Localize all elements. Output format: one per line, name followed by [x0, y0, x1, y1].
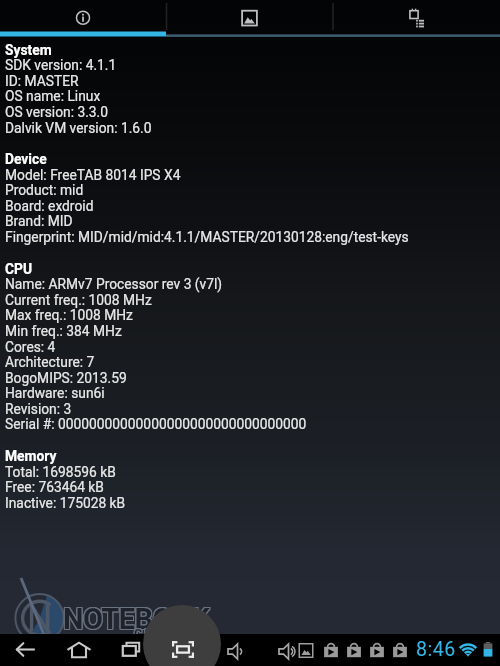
staticText: NOTEBOOK	[63, 602, 210, 636]
staticText: CENTER	[134, 625, 196, 640]
staticText: CENTER	[135, 626, 197, 641]
staticText: Revision: 3	[5, 401, 72, 417]
staticText: NOTEBOOK	[64, 602, 211, 636]
staticText: Board: exdroid	[5, 198, 94, 214]
staticText: CPU	[5, 261, 33, 277]
button[interactable]: Screenshot saved	[290, 634, 322, 666]
staticText: Memory	[5, 448, 57, 464]
staticText: Architecture: 7	[5, 354, 95, 370]
staticText: Serial #: 000000000000000000000000000000…	[5, 416, 307, 432]
staticText: BogoMIPS: 2013.59	[5, 370, 127, 386]
button[interactable]: Back	[10, 634, 42, 666]
staticText: CENTER	[133, 625, 195, 640]
button[interactable]: Recent apps	[115, 634, 147, 666]
staticText: NOTEBOOK	[62, 601, 209, 635]
staticText: Device	[5, 151, 47, 167]
staticText: Current freq.: 1008 MHz	[5, 292, 152, 308]
staticText: Total: 1698596 kB	[5, 464, 116, 480]
button[interactable]: Play Store update	[338, 634, 370, 666]
button[interactable]: Play Store update	[384, 634, 416, 666]
button[interactable]: Volume up	[271, 634, 303, 666]
button[interactable]: Screenshot	[167, 634, 199, 666]
staticText: Fingerprint: MID/mid/mid:4.1.1/MASTER/20…	[5, 229, 409, 245]
staticText: NOTEBOOK	[64, 601, 211, 635]
staticText: Max freq.: 1008 MHz	[5, 307, 133, 323]
staticText: NOTEBOOK	[62, 602, 209, 636]
button[interactable]: 8:46	[416, 638, 456, 661]
staticText: System	[5, 42, 52, 58]
staticText: CENTER	[134, 626, 196, 641]
staticText: OS version: 3.3.0	[5, 104, 108, 120]
staticText: Hardware: sun6i	[5, 385, 105, 401]
staticText: Brand: MID	[5, 213, 73, 229]
staticText: SDK version: 4.1.1	[5, 57, 117, 73]
staticText: Min freq.: 384 MHz	[5, 323, 122, 339]
button[interactable]: Screenshots	[166, 0, 333, 37]
staticText: ID: MASTER	[5, 73, 79, 89]
staticText: CENTER	[133, 626, 195, 641]
staticText: Cores: 4	[5, 339, 56, 355]
button[interactable]: Wi-Fi	[455, 634, 481, 666]
staticText: NOTEBOOK	[63, 601, 210, 635]
button[interactable]: Info	[0, 0, 166, 37]
button[interactable]: Play Store update	[315, 634, 347, 666]
button[interactable]: Reports	[333, 0, 500, 37]
staticText: Product: mid	[5, 182, 84, 198]
staticText: NOTEBOOK	[63, 603, 210, 637]
staticText: Model: FreeTAB 8014 IPS X4	[5, 167, 181, 183]
button[interactable]: Home	[63, 634, 95, 666]
button[interactable]: Play Store update	[361, 634, 393, 666]
staticText: Dalvik VM version: 1.6.0	[5, 120, 152, 136]
button[interactable]: Battery	[480, 634, 496, 666]
staticText: CENTER	[135, 625, 197, 640]
staticText: Inactive: 175028 kB	[5, 495, 126, 511]
staticText: NOTEBOOK	[64, 603, 211, 637]
staticText: CENTER	[134, 627, 196, 642]
staticText: CENTER	[133, 627, 195, 642]
staticText: NOTEBOOK	[62, 603, 209, 637]
staticText: Free: 763464 kB	[5, 479, 104, 495]
staticText: CENTER	[135, 627, 197, 642]
button[interactable]: Volume down	[220, 634, 252, 666]
staticText: OS name: Linux	[5, 88, 101, 104]
staticText: Name: ARMv7 Processor rev 3 (v7l)	[5, 276, 223, 292]
